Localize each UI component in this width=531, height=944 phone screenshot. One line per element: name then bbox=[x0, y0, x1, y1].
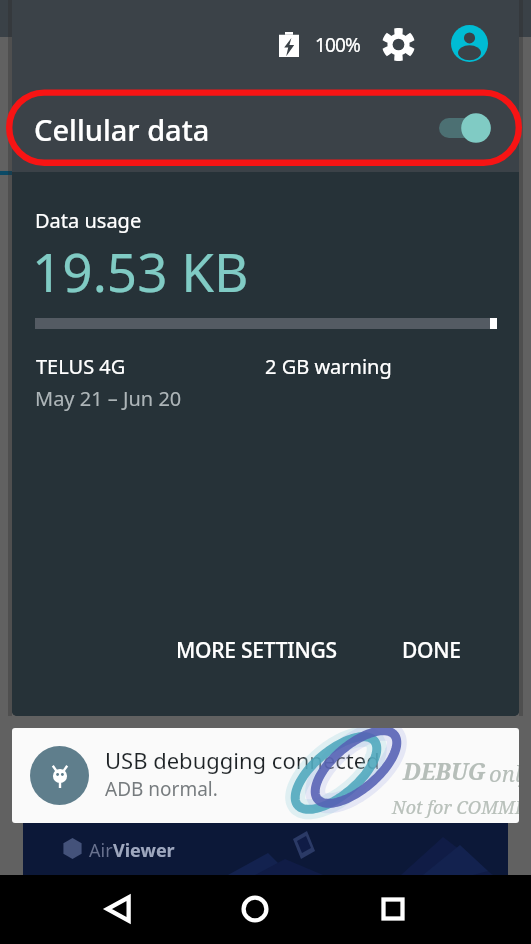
staticText: only bbox=[489, 758, 519, 788]
button[interactable]: Recents bbox=[363, 879, 423, 939]
staticText: TELUS 4G bbox=[36, 353, 126, 380]
staticText: Air bbox=[89, 838, 113, 863]
staticText: Data usage bbox=[35, 207, 142, 234]
button[interactable]: Cellular data bbox=[12, 89, 519, 172]
staticText: 2 GB warning bbox=[265, 353, 392, 380]
staticText: ADB normal. bbox=[105, 776, 218, 802]
staticText: Viewer bbox=[113, 838, 175, 863]
staticText: DONE bbox=[402, 636, 461, 665]
button[interactable]: MORE SETTINGS bbox=[162, 624, 351, 677]
button[interactable]: Home bbox=[225, 879, 285, 939]
staticText: MORE SETTINGS bbox=[176, 636, 337, 665]
staticText: DEBUG bbox=[403, 755, 487, 786]
button[interactable]: Back bbox=[88, 879, 148, 939]
button[interactable]: Cellular data toggle bbox=[439, 111, 491, 145]
staticText: Cellular data bbox=[34, 110, 210, 149]
button[interactable]: Settings bbox=[376, 22, 420, 66]
staticText: May 21 – Jun 20 bbox=[35, 385, 182, 412]
button[interactable]: USB debugging connected bbox=[12, 728, 519, 823]
button[interactable]: Account bbox=[447, 21, 491, 65]
staticText: USB debugging connected bbox=[105, 745, 380, 775]
staticText: Not for COMMERCIAL bbox=[392, 795, 519, 820]
staticText: 100% bbox=[315, 32, 360, 58]
button[interactable]: DONE bbox=[388, 624, 475, 677]
staticText: 19.53 KB bbox=[32, 235, 249, 307]
